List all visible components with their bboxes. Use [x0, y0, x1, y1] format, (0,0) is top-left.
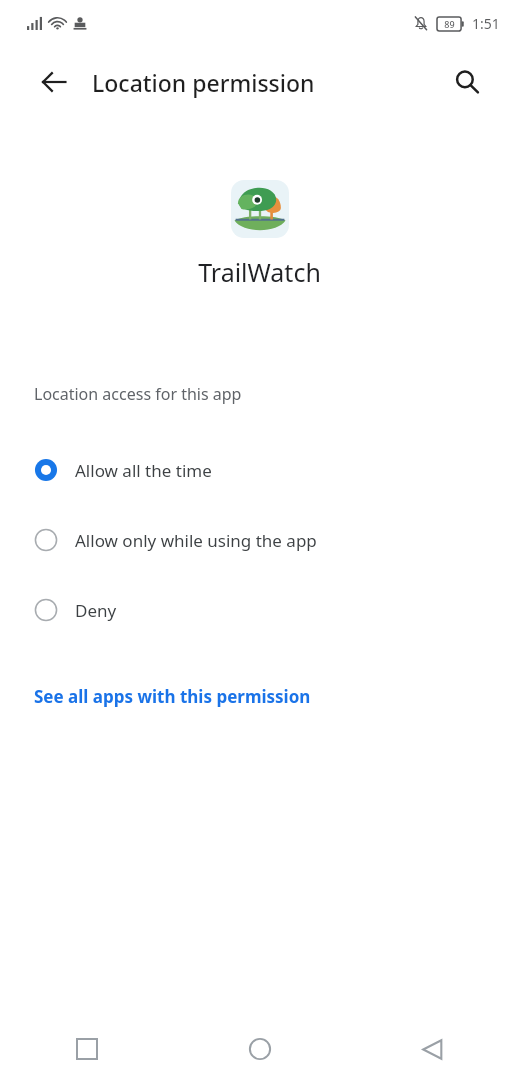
- staticText: Location access for this app: [34, 383, 242, 405]
- staticText: Allow all the time: [75, 459, 212, 482]
- staticText: 89: [444, 18, 455, 30]
- staticText: Deny: [75, 599, 117, 622]
- staticText: 1:51: [472, 14, 500, 33]
- staticText: Location permission: [92, 67, 315, 98]
- button[interactable]: Home: [173, 1018, 346, 1080]
- button[interactable]: Search: [443, 58, 491, 106]
- button[interactable]: Back: [346, 1018, 519, 1080]
- button[interactable]: Recent apps: [0, 1018, 173, 1080]
- button[interactable]: See all apps with this permission: [0, 679, 519, 714]
- button[interactable]: Deny: [0, 575, 519, 645]
- staticText: Allow only while using the app: [75, 529, 317, 552]
- button[interactable]: Allow only while using the app: [0, 505, 519, 575]
- staticText: TrailWatch: [198, 255, 321, 289]
- staticText: See all apps with this permission: [34, 685, 311, 708]
- button[interactable]: Back: [30, 58, 78, 106]
- button[interactable]: Allow all the time: [0, 435, 519, 505]
